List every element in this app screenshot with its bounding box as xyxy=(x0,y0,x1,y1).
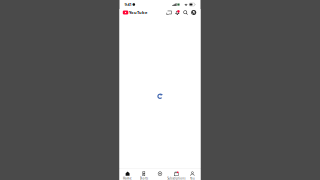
staticText: Shorts xyxy=(140,177,148,180)
button[interactable]: Notifications xyxy=(174,9,181,16)
staticText: You xyxy=(190,177,195,180)
button[interactable]: Account xyxy=(190,9,197,16)
button[interactable]: Search xyxy=(182,9,189,16)
staticText: YouTube xyxy=(129,10,147,15)
button[interactable]: Home xyxy=(119,169,136,180)
button[interactable] xyxy=(152,169,168,180)
staticText: 9:41 xyxy=(124,2,131,7)
button[interactable]: Shorts xyxy=(136,169,152,180)
button[interactable]: You xyxy=(184,169,200,180)
button[interactable]: YouTube xyxy=(123,9,147,16)
staticText: Subscriptions xyxy=(167,177,185,180)
button[interactable]: Cast xyxy=(166,9,173,16)
staticText: Home xyxy=(123,177,132,180)
button[interactable]: Subscriptions xyxy=(168,169,184,180)
